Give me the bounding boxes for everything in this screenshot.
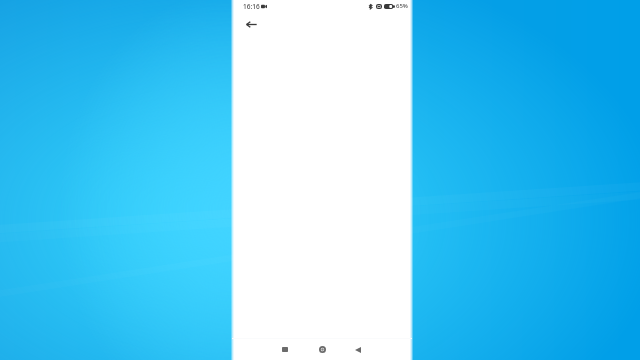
button[interactable]: Home [309,339,336,360]
staticText: 16:16 [243,2,260,11]
button[interactable]: Navigate up [242,15,260,33]
staticText: 65% [396,2,408,10]
button[interactable]: Recent apps [271,339,298,360]
button[interactable]: Back [344,339,371,360]
